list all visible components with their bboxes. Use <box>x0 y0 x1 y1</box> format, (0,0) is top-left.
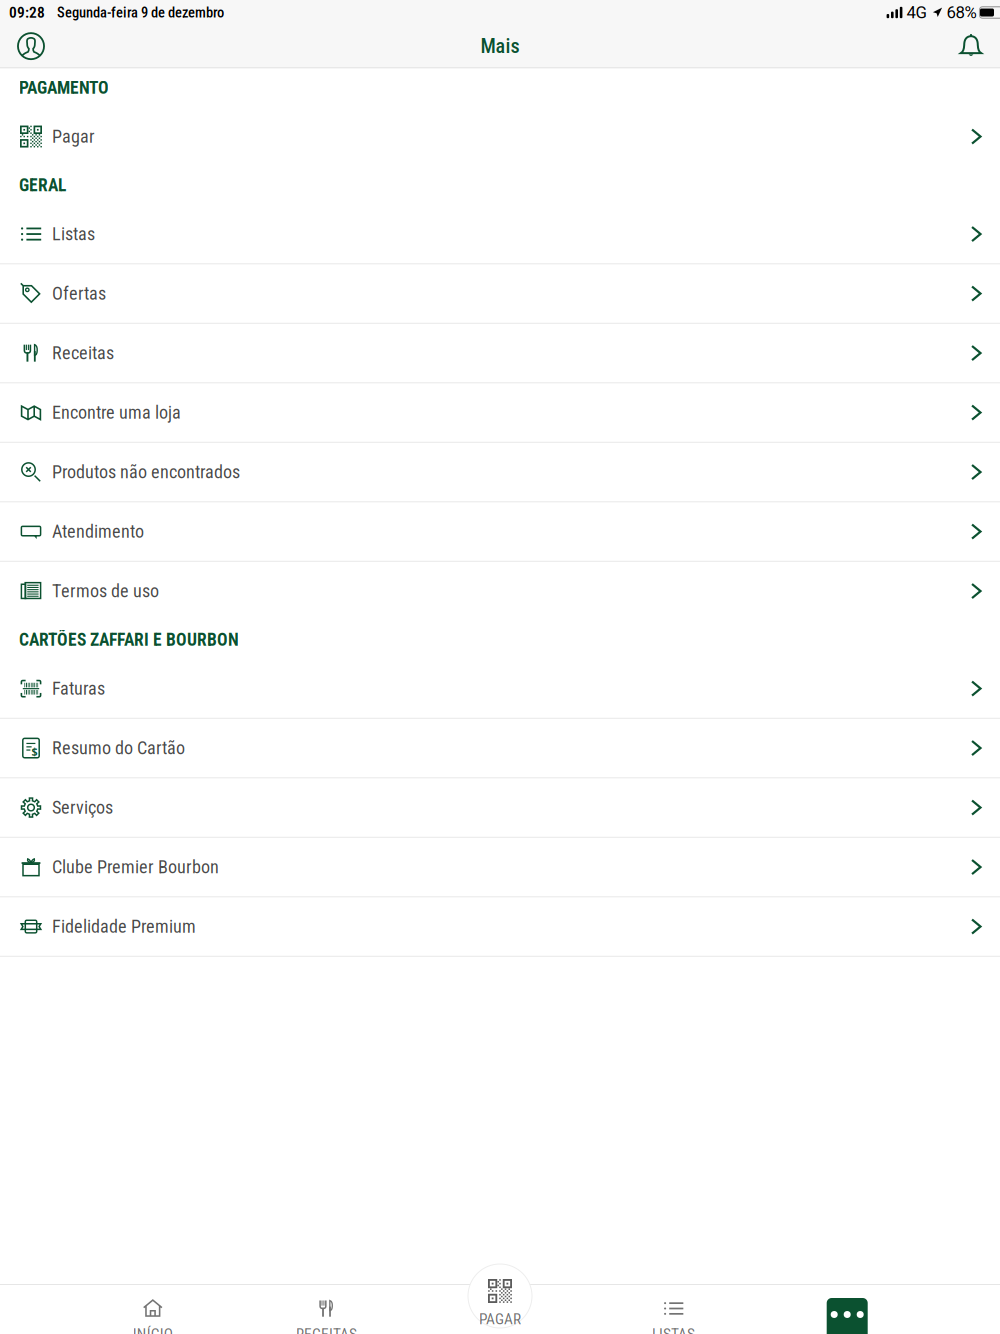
button[interactable]: Encontre uma loja <box>0 383 1000 443</box>
staticText: LISTAS <box>652 1325 695 1334</box>
button[interactable]: Fidelidade Premium <box>0 897 1000 957</box>
staticText: Termos de uso <box>52 580 159 602</box>
staticText: 68% <box>946 3 976 22</box>
staticText: 4G <box>906 3 926 22</box>
button[interactable]: Produtos não encontrados <box>0 443 1000 502</box>
staticText: Encontre uma loja <box>52 402 181 423</box>
staticText: Ofertas <box>52 283 106 304</box>
staticText: INÍCIO <box>133 1325 173 1334</box>
staticText: Produtos não encontrados <box>52 461 240 483</box>
staticText: Faturas <box>52 678 105 699</box>
button[interactable]: Mais <box>760 1285 934 1334</box>
staticText: CARTÕES ZAFFARI E BOURBON <box>19 630 239 650</box>
staticText: RECEITAS <box>296 1325 357 1334</box>
staticText: Atendimento <box>52 521 144 542</box>
button[interactable]: Pagar <box>0 107 1000 166</box>
button[interactable]: $ <box>0 719 1000 778</box>
button[interactable]: Clube Premier Bourbon <box>0 838 1000 897</box>
staticText: Mais <box>480 34 519 58</box>
button[interactable]: Ofertas <box>0 264 1000 324</box>
staticText: Resumo do Cartão <box>52 737 185 759</box>
button[interactable]: Faturas <box>0 659 1000 719</box>
button[interactable]: PAGAR <box>462 1264 538 1328</box>
button[interactable]: Termos de uso <box>0 562 1000 620</box>
staticText: GERAL <box>19 175 66 196</box>
button[interactable]: Notificações <box>947 21 1000 71</box>
staticText: PAGAR <box>479 1310 521 1328</box>
staticText: Clube Premier Bourbon <box>52 856 219 878</box>
staticText: Listas <box>52 223 95 245</box>
staticText: Receitas <box>52 342 114 364</box>
button[interactable]: RECEITAS <box>240 1285 413 1334</box>
button[interactable]: Perfil <box>0 21 55 71</box>
button[interactable]: INÍCIO <box>66 1285 240 1334</box>
staticText: Fidelidade Premium <box>52 916 196 937</box>
staticText: PAGAMENTO <box>19 78 109 98</box>
staticText: Segunda-feira 9 de dezembro <box>57 4 224 21</box>
button[interactable]: Serviços <box>0 778 1000 838</box>
staticText: Pagar <box>52 126 95 147</box>
button[interactable]: LISTAS <box>587 1285 760 1334</box>
staticText: Serviços <box>52 797 113 818</box>
staticText: $ <box>32 744 38 758</box>
button[interactable]: Atendimento <box>0 502 1000 562</box>
button[interactable]: Receitas <box>0 324 1000 383</box>
staticText: 09:28 <box>9 3 45 21</box>
button[interactable]: Listas <box>0 205 1000 264</box>
